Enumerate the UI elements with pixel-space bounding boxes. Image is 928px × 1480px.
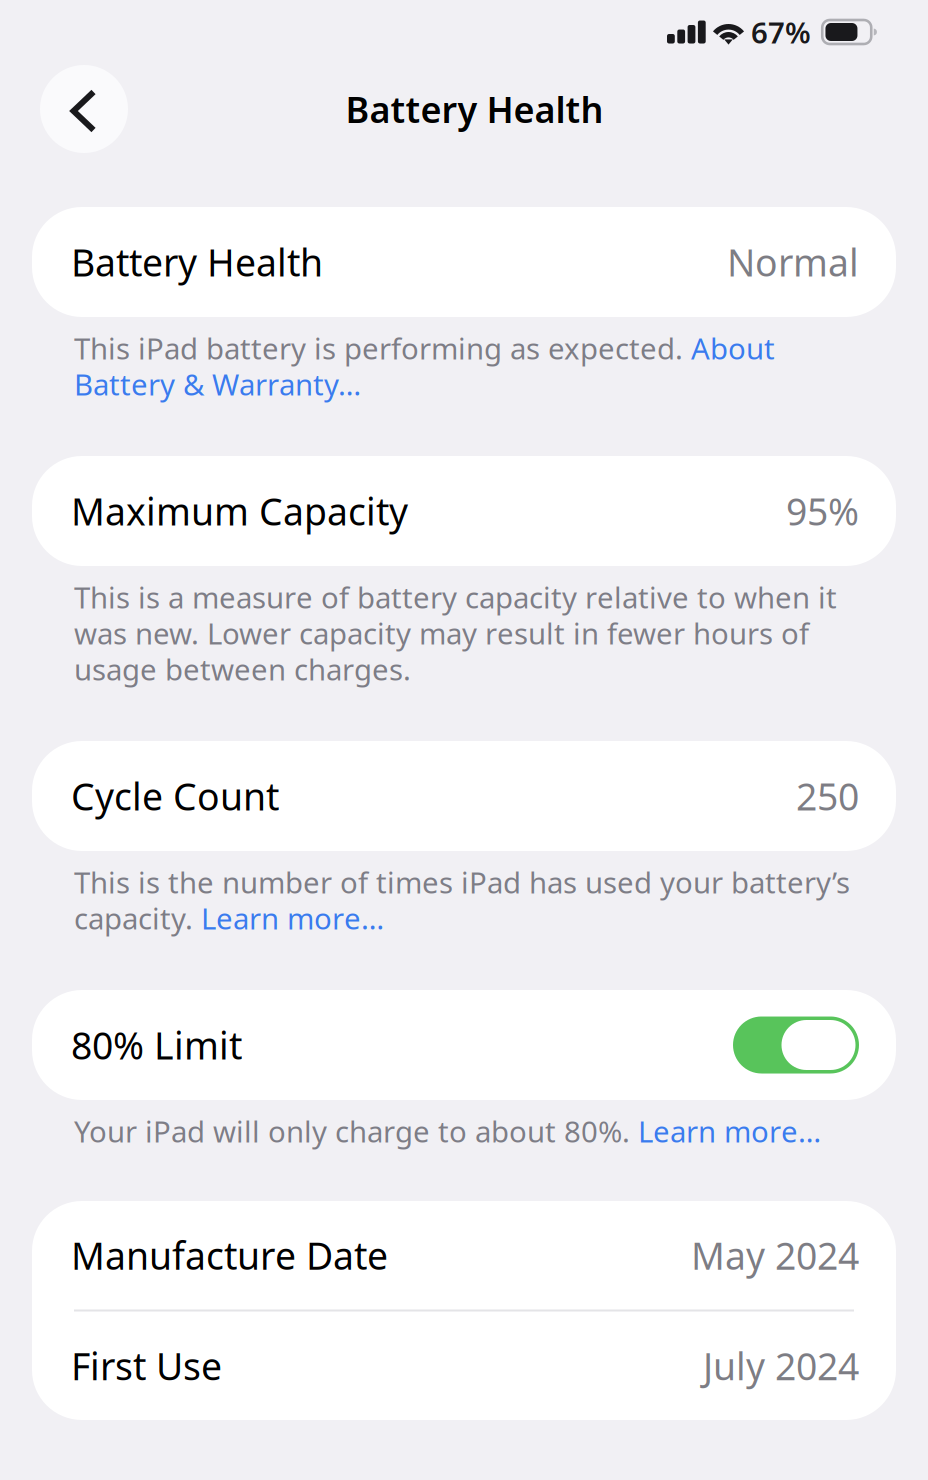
staticText: About: [691, 328, 775, 367]
staticText: 67%: [751, 12, 811, 51]
staticText: Battery Health: [345, 85, 603, 133]
staticText: Normal: [727, 237, 859, 287]
button[interactable]: Battery Health: [32, 207, 896, 317]
staticText: This is a measure of battery capacity re…: [74, 577, 837, 616]
staticText: 80% Limit: [71, 1020, 242, 1070]
staticText: was new. Lower capacity may result in fe…: [74, 613, 809, 652]
staticText: Maximum Capacity: [71, 486, 408, 536]
staticText: capacity.: [74, 898, 201, 937]
staticText: Cycle Count: [71, 771, 279, 821]
staticText: This is the number of times iPad has use…: [74, 862, 850, 901]
staticText: May 2024: [691, 1230, 859, 1280]
button[interactable]: Back: [40, 65, 128, 153]
button[interactable]: Learn more…: [201, 898, 384, 937]
button[interactable]: 80% Limit, on: [733, 1016, 859, 1073]
staticText: usage between charges.: [74, 649, 411, 688]
button[interactable]: Maximum Capacity: [32, 456, 896, 566]
staticText: Learn more…: [201, 898, 384, 937]
staticText: 95%: [786, 486, 859, 536]
button[interactable]: About: [691, 328, 775, 367]
staticText: 250: [796, 771, 859, 821]
staticText: First Use: [71, 1341, 222, 1391]
staticText: Manufacture Date: [71, 1230, 388, 1280]
button[interactable]: Learn more…: [638, 1111, 821, 1150]
staticText: Battery Health: [71, 237, 323, 287]
staticText: Learn more…: [638, 1111, 821, 1150]
staticText: Battery & Warranty…: [74, 364, 361, 403]
button[interactable]: Cycle Count: [32, 741, 896, 851]
button[interactable]: Battery & Warranty…: [74, 364, 361, 403]
staticText: July 2024: [703, 1341, 859, 1391]
staticText: Your iPad will only charge to about 80%.: [74, 1111, 638, 1150]
staticText: This iPad battery is performing as expec…: [74, 328, 691, 367]
